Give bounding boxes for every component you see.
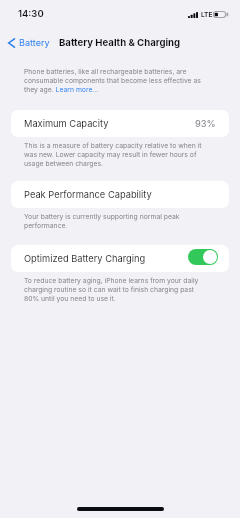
- staticText: Maximum Capacity: [24, 118, 109, 129]
- staticText: This is a measure of battery capacity re…: [24, 141, 205, 168]
- staticText: 14:30: [18, 8, 44, 19]
- button[interactable]: Battery: [5, 34, 53, 51]
- staticText: Peak Performance Capability: [24, 189, 152, 200]
- staticText: To reduce battery aging, iPhone learns f…: [24, 276, 205, 303]
- staticText: Battery: [19, 37, 50, 48]
- staticText: 93%: [195, 118, 216, 129]
- staticText: Phone batteries, like all rechargeable b…: [24, 67, 205, 94]
- button[interactable]: Maximum Capacity: [11, 110, 229, 137]
- button[interactable]: Peak Performance Capability: [11, 181, 229, 208]
- button[interactable]: Optimized Battery Charging toggle: [188, 249, 218, 265]
- staticText: Optimized Battery Charging: [24, 253, 146, 264]
- button[interactable]: Optimized Battery Charging: [11, 245, 229, 272]
- staticText: LTE: [201, 11, 213, 19]
- staticText: Your battery is currently supporting nor…: [24, 212, 205, 230]
- staticText: Battery Health & Charging: [59, 37, 181, 49]
